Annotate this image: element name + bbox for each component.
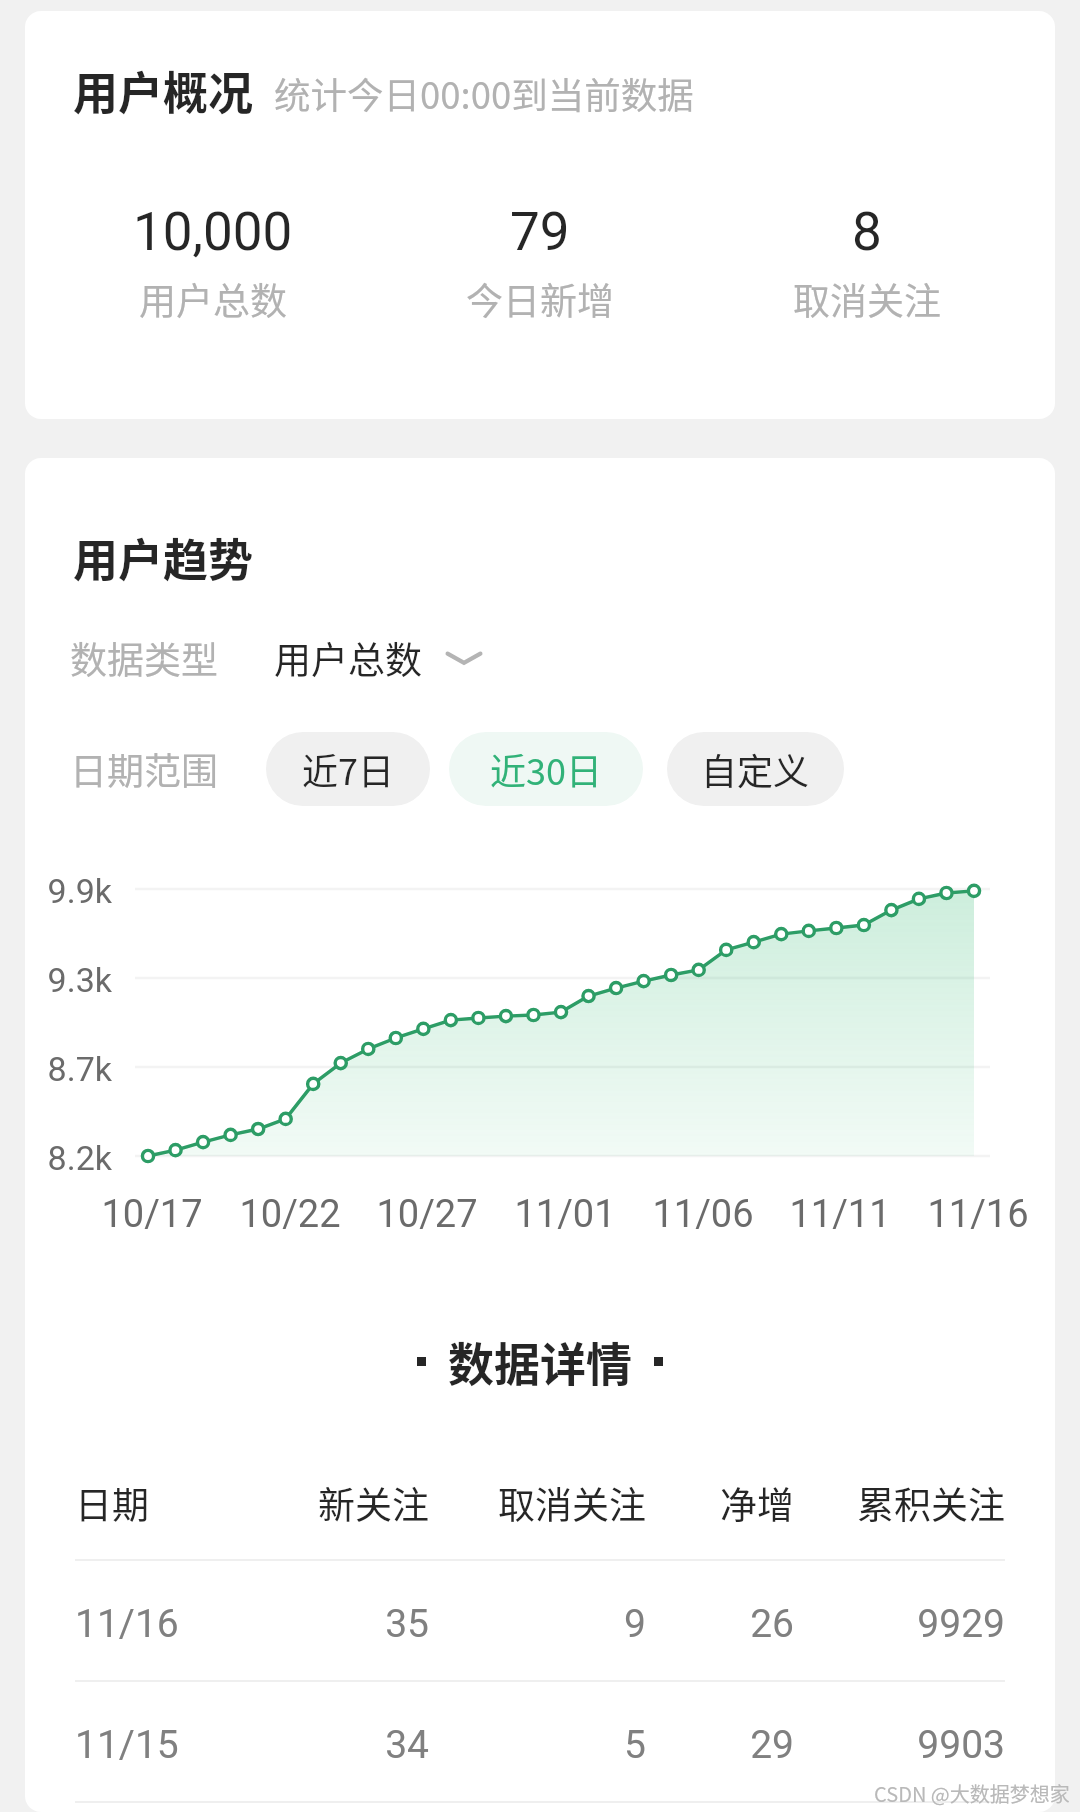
button[interactable]: 用户总数 [274, 631, 484, 685]
staticText: 11/01 [490, 1192, 640, 1237]
staticText: 取消关注 [793, 272, 941, 326]
staticText: 10/17 [77, 1192, 227, 1237]
staticText: 用户总数 [139, 272, 287, 326]
staticText: 35 [279, 1601, 429, 1647]
button[interactable]: 近30日 [449, 732, 643, 806]
other: Select data type [444, 638, 484, 678]
staticText: 日期范围 [70, 742, 218, 796]
staticText: 11/16 [903, 1192, 1053, 1237]
staticText: 11/16 [75, 1601, 279, 1647]
staticText: 9.3k [25, 960, 112, 1000]
staticText: 用户趋势 [73, 525, 254, 590]
button[interactable]: 11/15 [75, 1682, 1005, 1801]
staticText: 11/11 [765, 1192, 915, 1237]
staticText: 11/15 [75, 1722, 279, 1768]
staticText: 10,000 [133, 201, 293, 263]
staticText: 10/27 [352, 1192, 502, 1237]
staticText: 9929 [794, 1601, 1005, 1647]
staticText: 9903 [794, 1722, 1005, 1768]
staticText: 8 [852, 201, 882, 263]
staticText: 9.9k [25, 871, 112, 911]
button[interactable]: 11/16 [75, 1561, 1005, 1680]
staticText: 日期 [75, 1476, 279, 1530]
staticText: 今日新增 [466, 272, 614, 326]
staticText: 34 [279, 1722, 429, 1768]
staticText: 数据类型 [70, 631, 218, 685]
staticText: 9 [429, 1601, 646, 1647]
staticText: 用户概况 [73, 58, 254, 123]
staticText: 净增 [646, 1476, 794, 1530]
staticText: 11/06 [628, 1192, 778, 1237]
staticText: 近7日 [302, 743, 394, 795]
staticText: 79 [510, 201, 570, 263]
staticText: 10/22 [215, 1192, 365, 1237]
staticText: 8.7k [25, 1049, 112, 1089]
staticText: 取消关注 [429, 1476, 646, 1530]
staticText: 自定义 [701, 743, 810, 795]
staticText: 26 [646, 1601, 794, 1647]
staticText: 近30日 [490, 743, 602, 795]
button[interactable]: 近7日 [266, 732, 430, 806]
button[interactable]: 自定义 [667, 732, 844, 806]
staticText: 8.2k [25, 1138, 112, 1178]
staticText: 数据详情 [448, 1328, 632, 1395]
staticText: CSDN @大数据梦想家 [874, 1779, 1070, 1808]
staticText: 新关注 [279, 1476, 429, 1530]
staticText: 5 [429, 1722, 646, 1768]
staticText: 统计今日00:00到当前数据 [274, 67, 694, 120]
staticText: 累积关注 [794, 1476, 1005, 1530]
staticText: 29 [646, 1722, 794, 1768]
staticText: 用户总数 [274, 631, 422, 685]
